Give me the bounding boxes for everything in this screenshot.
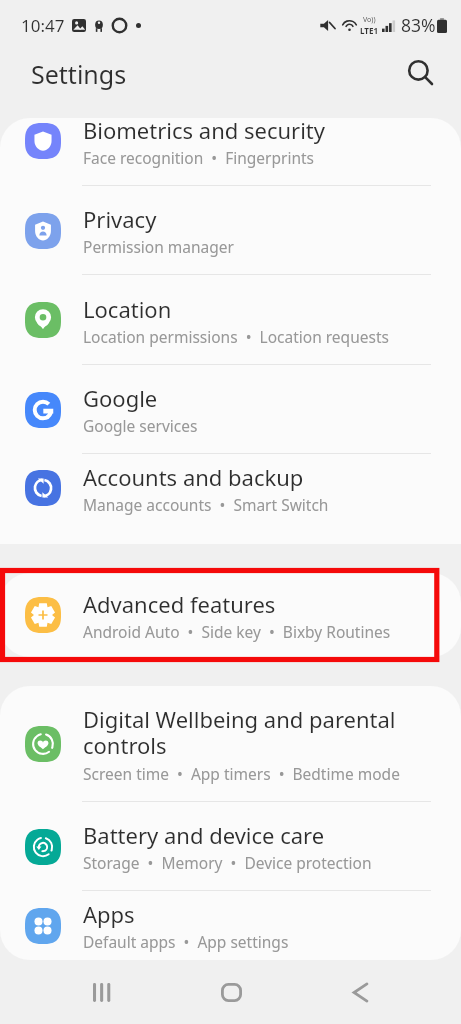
- staticText: Android Auto • Side key • Bixby Routines: [83, 621, 391, 642]
- staticText: Biometrics and security: [83, 118, 326, 145]
- staticText: Manage accounts • Smart Switch: [83, 494, 329, 515]
- staticText: 10:47: [21, 14, 65, 37]
- staticText: Digital Wellbeing and parental controls: [83, 704, 401, 761]
- staticText: Google services: [83, 415, 198, 436]
- button[interactable]: Digital Wellbeing and parental controls: [0, 686, 461, 802]
- staticText: Default apps • App settings: [83, 931, 289, 952]
- staticText: Battery and device care: [83, 820, 325, 850]
- staticText: Face recognition • Fingerprints: [83, 147, 315, 168]
- button[interactable]: Advanced features: [0, 573, 461, 657]
- button[interactable]: Search: [399, 51, 443, 95]
- staticText: Advanced features: [83, 589, 276, 619]
- staticText: Storage • Memory • Device protection: [83, 852, 372, 873]
- staticText: Vo)): [363, 15, 376, 25]
- button[interactable]: Apps: [0, 891, 461, 960]
- button[interactable]: Home: [199, 960, 263, 1024]
- staticText: Location: [83, 294, 172, 324]
- button[interactable]: Biometrics and security: [0, 118, 461, 186]
- staticText: Privacy: [83, 204, 157, 234]
- staticText: Settings: [31, 57, 127, 91]
- staticText: LTE1: [360, 25, 378, 36]
- staticText: Accounts and backup: [83, 462, 304, 492]
- button[interactable]: Google: [0, 365, 461, 454]
- button[interactable]: Back: [328, 960, 392, 1024]
- staticText: Apps: [83, 899, 135, 929]
- button[interactable]: Battery and device care: [0, 802, 461, 891]
- button[interactable]: Accounts and backup: [0, 454, 461, 522]
- staticText: Screen time • App timers • Bedtime mode: [83, 763, 400, 784]
- staticText: Location permissions • Location requests: [83, 326, 389, 347]
- staticText: Permission manager: [83, 236, 234, 257]
- staticText: 83%: [401, 13, 436, 37]
- staticText: Google: [83, 383, 158, 413]
- button[interactable]: Privacy: [0, 186, 461, 275]
- button[interactable]: Recent apps: [70, 960, 134, 1024]
- button[interactable]: Location: [0, 275, 461, 365]
